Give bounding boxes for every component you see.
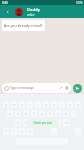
- button[interactable]: Send: [73, 84, 82, 93]
- button[interactable]: Are you already in bed?: [2, 20, 45, 31]
- other: Attach: [59, 86, 63, 90]
- button[interactable]: Back: [0, 5, 15, 18]
- button[interactable]: 3: [27, 128, 33, 135]
- button[interactable]: m: [63, 119, 69, 126]
- staticText: a: [9, 112, 11, 116]
- staticText: online: [27, 13, 35, 17]
- button[interactable]: j: [55, 110, 61, 117]
- staticText: c: [33, 121, 35, 125]
- button[interactable]: n: [55, 119, 61, 126]
- staticText: o: [69, 103, 71, 107]
- staticText: l: [74, 112, 75, 116]
- button[interactable]: l: [71, 110, 77, 117]
- staticText: 1: [13, 130, 15, 134]
- staticText: p: [77, 103, 79, 107]
- staticText: z: [17, 121, 19, 125]
- button[interactable]: z: [15, 119, 21, 126]
- staticText: v: [41, 121, 43, 125]
- button[interactable]: b: [47, 119, 53, 126]
- staticText: Are you already in bed?: [4, 23, 43, 28]
- staticText: ,: [54, 130, 55, 134]
- button[interactable]: d: [23, 110, 29, 117]
- button[interactable]: p: [75, 101, 81, 108]
- button[interactable]: x: [23, 119, 29, 126]
- button[interactable]: h: [47, 110, 53, 117]
- button[interactable]: ?: [3, 128, 9, 135]
- staticText: u: [53, 103, 55, 107]
- other: Camera: [65, 86, 69, 90]
- staticText: 3: [29, 130, 31, 134]
- button[interactable]: f: [31, 110, 37, 117]
- button[interactable]: v: [39, 119, 45, 126]
- button[interactable]: y: [43, 101, 49, 108]
- staticText: d: [25, 112, 27, 116]
- button[interactable]: k: [63, 110, 69, 117]
- staticText: s: [17, 112, 19, 116]
- staticText: Check pre-text: [33, 121, 52, 125]
- staticText: h: [49, 112, 51, 116]
- staticText: 9:35: [2, 1, 8, 5]
- staticText: e: [21, 103, 23, 107]
- button[interactable]: 1: [11, 128, 17, 135]
- staticText: i: [62, 103, 63, 107]
- button[interactable]: Profile photo: [15, 8, 23, 16]
- staticText: ?: [5, 130, 7, 134]
- staticText: j: [58, 112, 59, 116]
- button[interactable]: t: [35, 101, 41, 108]
- staticText: .: [78, 130, 79, 134]
- staticText: x: [25, 121, 27, 125]
- button[interactable]: 2: [19, 128, 25, 135]
- other: Emoji: [4, 86, 9, 91]
- button[interactable]: s: [15, 110, 21, 117]
- staticText: m: [65, 121, 68, 125]
- staticText: k: [65, 112, 67, 116]
- button[interactable]: c: [31, 119, 37, 126]
- staticText: t: [37, 103, 39, 107]
- button[interactable]: i: [59, 101, 65, 108]
- staticText: b: [49, 121, 51, 125]
- staticText: y: [45, 103, 47, 107]
- button[interactable]: q: [3, 101, 9, 108]
- button[interactable]: r: [27, 101, 33, 108]
- staticText: r: [29, 103, 31, 107]
- staticText: 100%: [76, 1, 83, 5]
- button[interactable]: Emoji: [2, 83, 71, 93]
- staticText: q: [5, 103, 7, 107]
- button[interactable]: Check pre-text: [26, 119, 59, 127]
- staticText: 2: [21, 130, 23, 134]
- staticText: w: [13, 103, 16, 107]
- staticText: f: [33, 112, 35, 116]
- button[interactable]: w: [11, 101, 17, 108]
- button[interactable]: o: [67, 101, 73, 108]
- button[interactable]: e: [19, 101, 25, 108]
- staticText: Daddy: [27, 7, 40, 13]
- staticText: g: [41, 112, 43, 116]
- button[interactable]: u: [51, 101, 57, 108]
- button[interactable]: a: [7, 110, 13, 117]
- button[interactable]: g: [39, 110, 45, 117]
- staticText: Type a message: [10, 86, 34, 90]
